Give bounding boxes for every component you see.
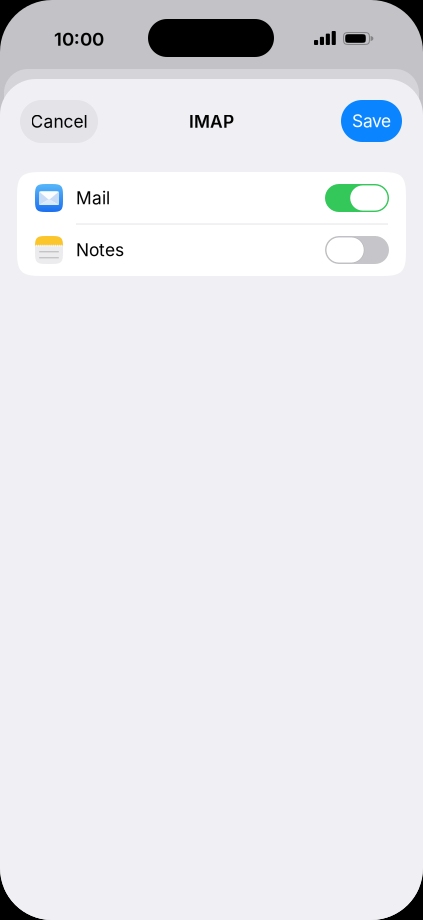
staticText: Save [352, 110, 391, 131]
staticText: Notes [76, 239, 124, 260]
staticText: 10:00 [54, 28, 104, 50]
button[interactable]: Notes [17, 224, 406, 276]
staticText: IMAP [189, 111, 234, 132]
button[interactable]: Cancel [20, 100, 98, 143]
button[interactable]: Save [341, 100, 402, 142]
staticText: Mail [76, 187, 110, 208]
staticText: Cancel [30, 111, 87, 132]
button[interactable]: Mail [17, 172, 406, 224]
